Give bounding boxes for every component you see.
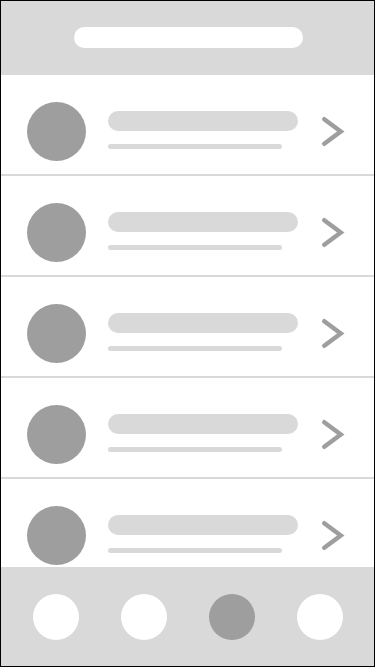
other: Open bbox=[322, 117, 343, 146]
button[interactable]: Home bbox=[12, 569, 100, 667]
button[interactable]: Search bbox=[74, 27, 303, 48]
other: Open bbox=[322, 218, 343, 247]
button[interactable]: Search bbox=[100, 569, 188, 667]
other: Open bbox=[322, 420, 343, 449]
button[interactable]: Open bbox=[0, 277, 375, 378]
button[interactable]: Open bbox=[0, 75, 375, 176]
button[interactable]: Profile bbox=[276, 569, 364, 667]
button[interactable]: Open bbox=[0, 479, 375, 569]
button[interactable]: Open bbox=[0, 176, 375, 277]
button[interactable]: Open bbox=[0, 378, 375, 479]
other: Open bbox=[322, 319, 343, 348]
other: Open bbox=[322, 521, 343, 550]
button[interactable]: Favourites bbox=[188, 569, 276, 667]
